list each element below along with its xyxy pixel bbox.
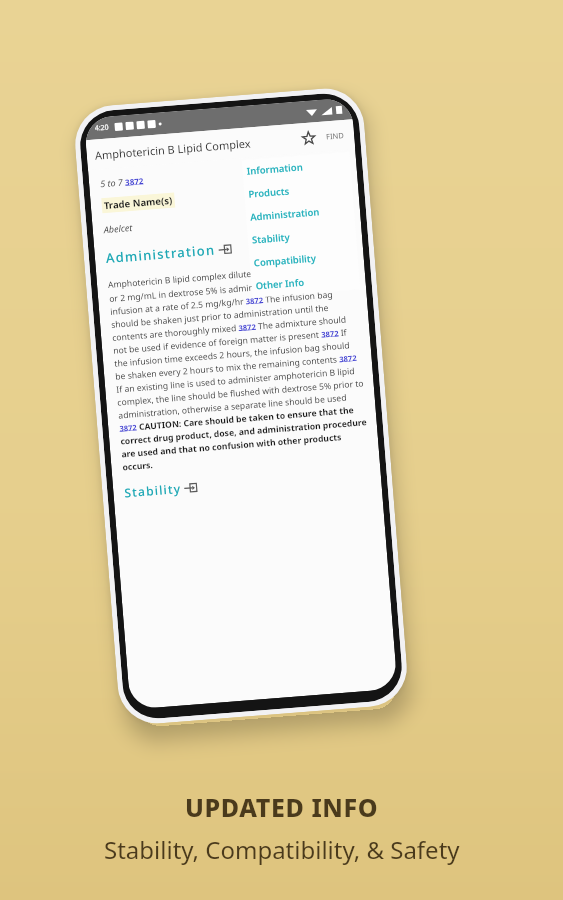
staticText: 4:20 [94,122,109,134]
staticText: FIND [326,130,344,141]
staticText: UPDATED INFO [185,790,379,824]
button[interactable]: Compatibility [249,243,358,275]
staticText: Stability, Compatibility, & Safety [104,833,460,866]
button[interactable]: Administration [245,198,355,229]
button[interactable]: Favorite [297,127,319,149]
button[interactable]: Stability [124,477,198,502]
staticText: Abelcet [103,221,133,235]
staticText: Trade Name(s) [103,194,173,212]
button[interactable]: Stability [247,220,357,252]
staticText: Amphotericin B lipid complex diluted to … [108,260,369,472]
staticText: Stability [124,480,182,500]
staticText: Administration [250,205,320,224]
staticText: Compatibility [253,252,317,269]
button[interactable]: Information [242,152,351,183]
staticText: Products [248,185,290,201]
staticText: Other Info [255,276,305,292]
staticText: Administration [105,240,216,267]
button[interactable]: Other Info [251,266,360,298]
staticText: Amphotericin B Lipid Complex [94,132,299,163]
staticText: Stability [251,231,290,247]
button[interactable]: Administration [105,237,232,269]
button[interactable]: FIND [323,126,347,146]
button[interactable]: Products [243,175,353,206]
staticText: 5 to 7 3872 [100,174,144,189]
staticText: Information [246,160,304,178]
